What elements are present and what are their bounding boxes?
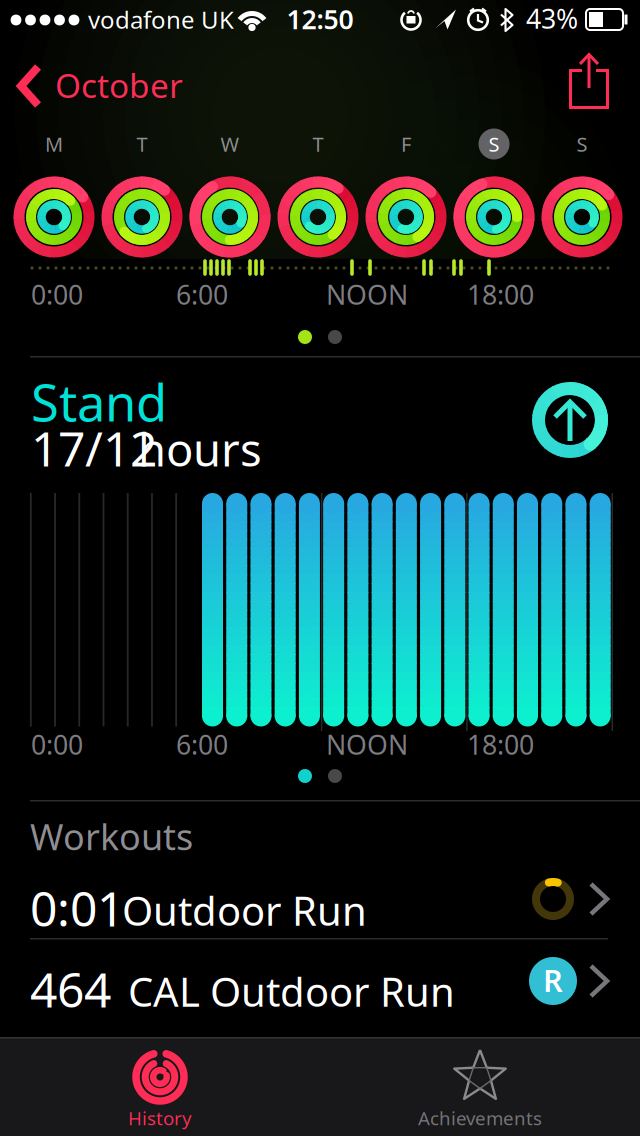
staticText: W <box>220 131 239 157</box>
staticText: vodafone UK <box>88 3 234 35</box>
staticText: 0:00 <box>31 277 83 312</box>
staticText: Workouts <box>30 812 193 860</box>
staticText: October <box>55 63 183 107</box>
button[interactable]: F <box>362 120 450 262</box>
staticText: F <box>401 131 411 157</box>
staticText: 17/12 <box>31 416 157 480</box>
staticText: NOON <box>326 277 408 312</box>
staticText: 6:00 <box>176 277 228 312</box>
staticText: T <box>312 131 323 157</box>
staticText: History <box>128 1106 192 1130</box>
button[interactable]: Achievements <box>320 1037 640 1136</box>
button[interactable]: S <box>450 120 538 262</box>
staticText: 43% <box>526 1 578 36</box>
button[interactable]: History <box>0 1037 320 1136</box>
button[interactable]: M <box>10 120 98 262</box>
staticText: 12:50 <box>286 1 353 37</box>
staticText: Stand <box>31 368 167 436</box>
button[interactable]: W <box>186 120 274 262</box>
button[interactable]: October <box>6 52 206 120</box>
staticText: 464 <box>30 957 111 1021</box>
staticText: CAL Outdoor Run <box>128 965 455 1018</box>
button[interactable]: T <box>98 120 186 262</box>
button[interactable]: S <box>538 120 626 262</box>
staticText: NOON <box>326 727 408 762</box>
staticText: 0:00 <box>31 727 83 762</box>
staticText: S <box>576 131 587 157</box>
staticText: Outdoor Run <box>122 884 367 937</box>
staticText: 18:00 <box>467 277 534 312</box>
staticText: 6:00 <box>176 727 228 762</box>
button[interactable]: T <box>274 120 362 262</box>
staticText: Achievements <box>418 1106 542 1130</box>
staticText: M <box>45 131 63 157</box>
button[interactable]: 464 <box>0 942 640 1036</box>
staticText: T <box>136 131 147 157</box>
button[interactable]: 0:01 <box>0 860 640 938</box>
staticText: 18:00 <box>467 727 534 762</box>
staticText: R <box>543 960 563 1000</box>
staticText: 0:01 <box>30 876 124 940</box>
staticText: S <box>488 131 499 157</box>
button[interactable] <box>556 44 622 118</box>
staticText: hours <box>138 419 262 479</box>
